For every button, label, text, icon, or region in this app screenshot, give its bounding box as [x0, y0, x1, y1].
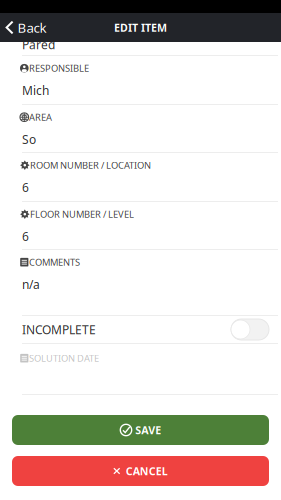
button[interactable]: SAVE: [12, 415, 269, 445]
staticText: Pared: [22, 36, 55, 52]
staticText: COMMENTS: [29, 256, 80, 268]
staticText: FLOOR NUMBER / LEVEL: [30, 208, 134, 220]
staticText: AREA: [29, 111, 52, 123]
staticText: n/a: [22, 276, 40, 292]
staticText: RESPONSIBLE: [29, 62, 89, 74]
staticText: Mich: [22, 82, 49, 98]
staticText: Back: [17, 19, 46, 36]
staticText: 6: [22, 179, 29, 195]
staticText: INCOMPLETE: [22, 321, 96, 337]
staticText: SAVE: [135, 423, 161, 437]
staticText: So: [22, 131, 36, 147]
staticText: SOLUTION DATE: [29, 352, 99, 364]
button[interactable]: Back: [0, 13, 58, 42]
staticText: CANCEL: [126, 464, 168, 478]
button[interactable]: CANCEL: [12, 456, 269, 486]
staticText: ROOM NUMBER / LOCATION: [30, 159, 151, 171]
staticText: 6: [22, 228, 29, 244]
staticText: EDIT ITEM: [114, 20, 167, 35]
